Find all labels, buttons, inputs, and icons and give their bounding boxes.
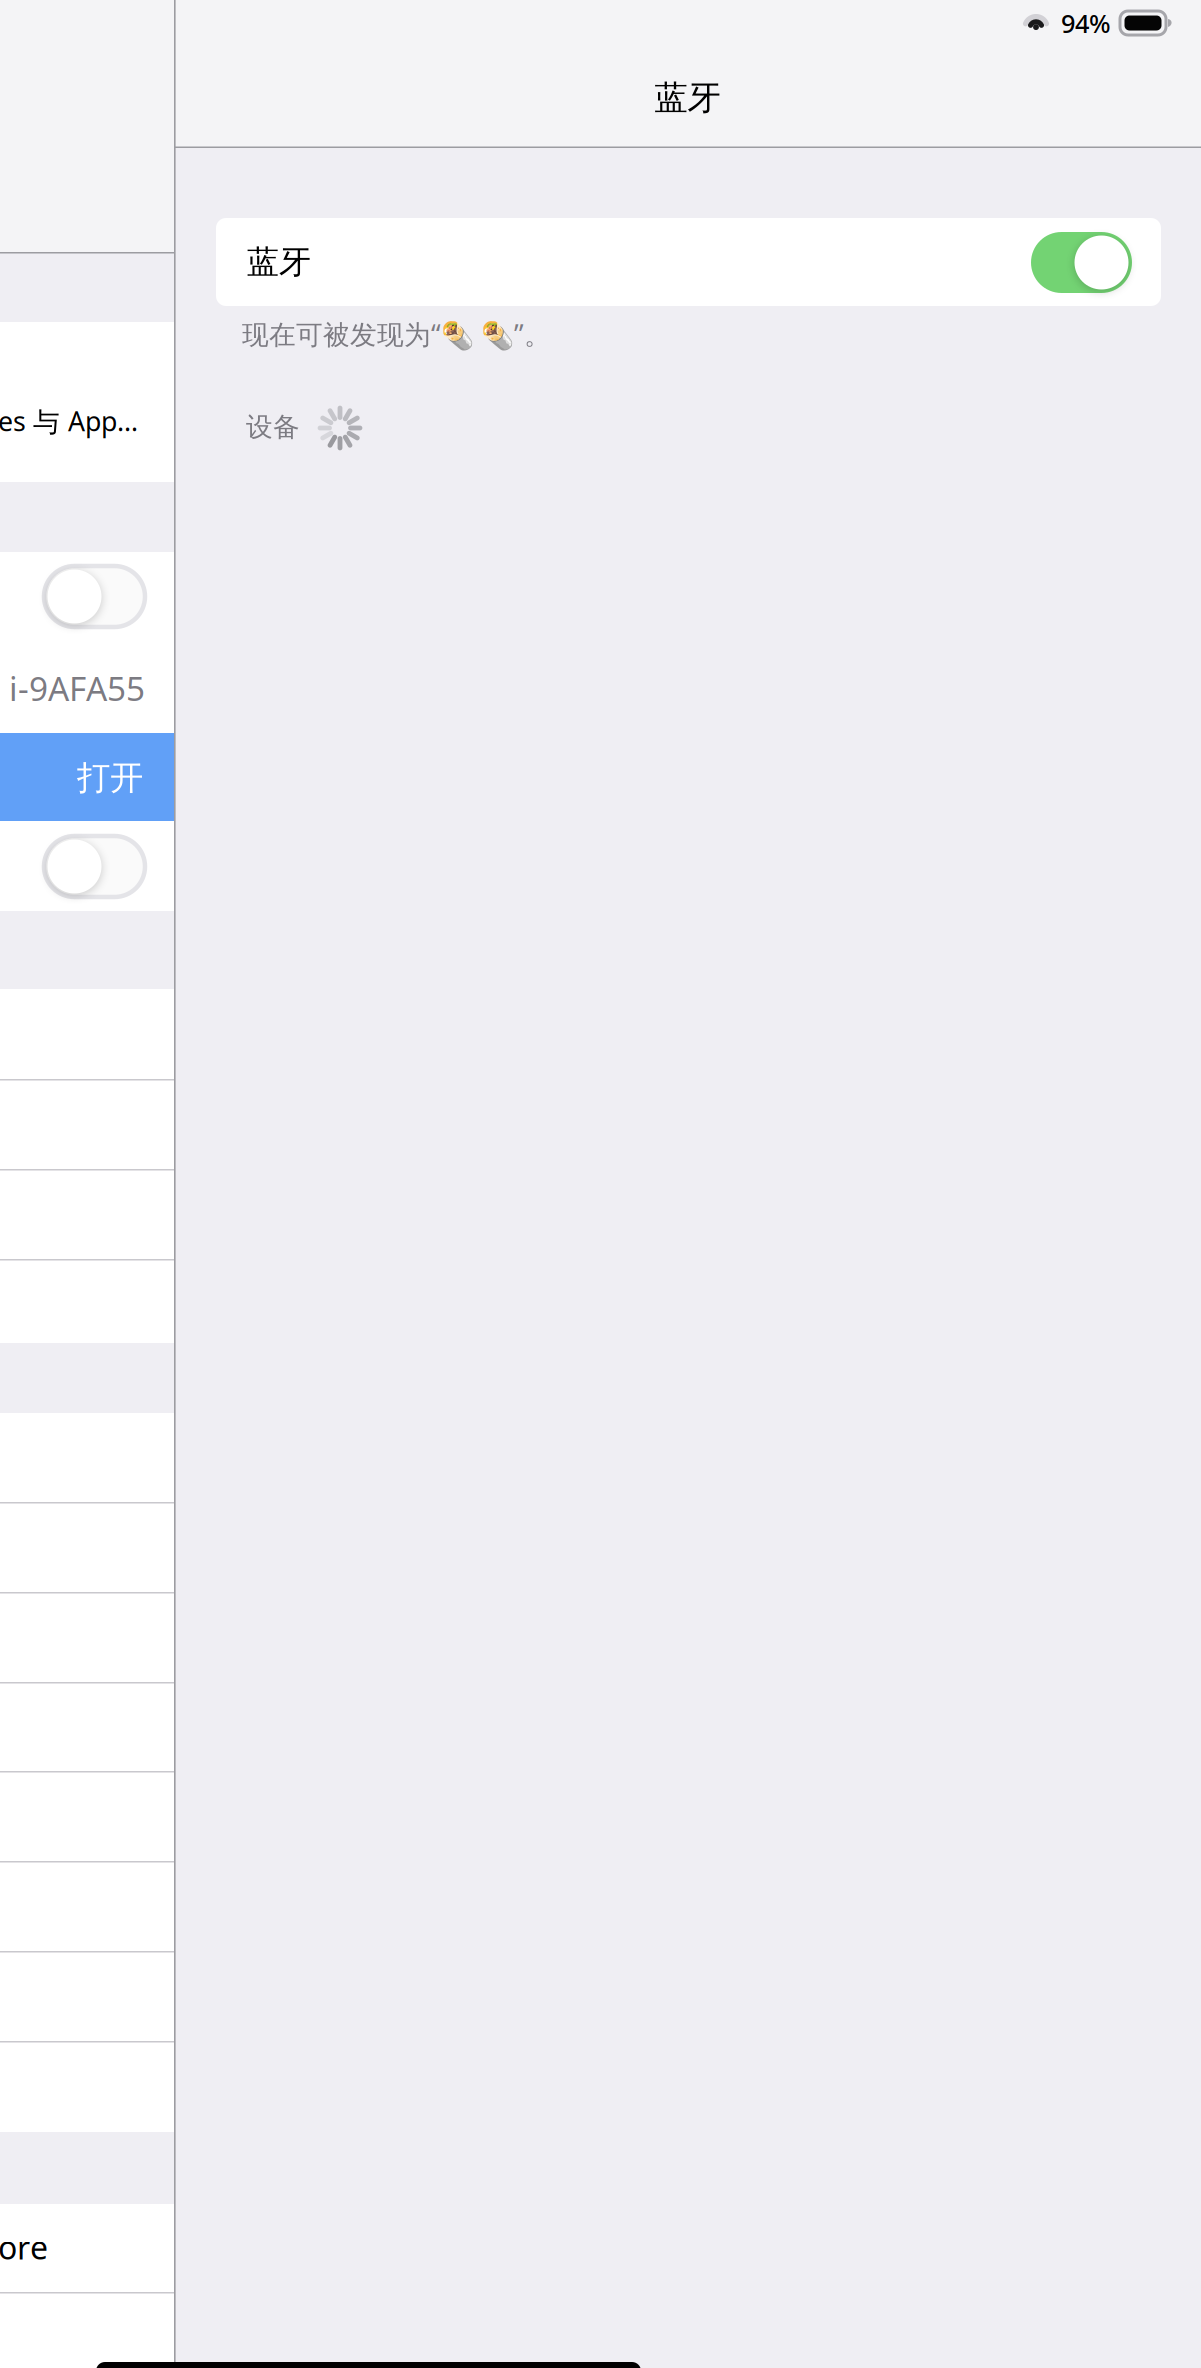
staticText: 蓝牙 <box>247 242 311 282</box>
staticText: 94% <box>1061 6 1111 40</box>
staticText: 蓝牙 <box>654 77 720 118</box>
button[interactable]: 蓝牙 <box>216 218 1161 306</box>
button[interactable]: i-9AFA55 <box>0 641 174 733</box>
staticText: 现在可被发现为“🌯 🌯”。 <box>242 316 551 352</box>
staticText: 设备 <box>246 411 300 443</box>
staticText: es 与 App… <box>0 403 138 439</box>
staticText: i-9AFA55 <box>9 666 145 710</box>
button[interactable]: 飞行模式 <box>0 552 174 641</box>
button[interactable]: 蜂窝网络 <box>0 821 174 911</box>
button[interactable]: ore <box>0 2204 174 2292</box>
button[interactable]: 打开 <box>0 733 174 821</box>
button[interactable]: es 与 App… <box>0 322 174 482</box>
staticText: ore <box>0 2226 48 2268</box>
staticText: 打开 <box>77 757 143 798</box>
